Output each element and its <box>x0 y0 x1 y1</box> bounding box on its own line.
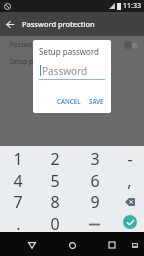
staticText: 6 <box>90 170 100 192</box>
staticText: Setup password <box>10 57 58 66</box>
staticText: 0 <box>50 213 60 235</box>
staticText: SAVE <box>89 97 104 105</box>
staticText: 11:33 <box>123 1 141 11</box>
staticText: 4 <box>13 170 23 192</box>
button[interactable]: Navigate up <box>0 12 20 36</box>
staticText: 9 <box>90 191 100 213</box>
staticText: Password protection <box>22 19 95 29</box>
button[interactable]: Backspace <box>115 191 144 213</box>
staticText: , <box>127 170 132 192</box>
button[interactable]: Minus <box>115 148 144 170</box>
button[interactable]: Switch keyboard <box>126 233 144 256</box>
staticText: Password <box>42 64 88 78</box>
button[interactable]: 0 <box>36 213 73 235</box>
staticText: 1 <box>13 148 23 170</box>
button[interactable]: . <box>0 213 36 235</box>
button[interactable]: Space <box>74 213 115 235</box>
button[interactable]: Password protection <box>0 36 144 53</box>
staticText: - <box>127 148 133 170</box>
button[interactable]: Setup password <box>0 53 144 70</box>
staticText: 3 <box>90 148 100 170</box>
button[interactable]: 1 <box>0 148 36 170</box>
button[interactable]: 7 <box>0 191 36 213</box>
button[interactable]: 2 <box>36 148 73 170</box>
staticText: Password protection <box>10 40 72 49</box>
button[interactable]: 9 <box>74 191 115 213</box>
button[interactable]: Home <box>52 233 92 256</box>
staticText: 5 <box>50 170 60 192</box>
button[interactable]: 5 <box>36 170 73 192</box>
staticText: Setup password <box>39 46 99 57</box>
button[interactable]: 3 <box>74 148 115 170</box>
button[interactable]: 4 <box>0 170 36 192</box>
staticText: 2 <box>50 148 60 170</box>
button[interactable]: Recent apps <box>92 233 132 256</box>
button[interactable]: SAVE <box>87 95 106 107</box>
staticText: 8 <box>50 191 60 213</box>
button[interactable]: 8 <box>36 191 73 213</box>
staticText: CANCEL <box>57 97 81 105</box>
button[interactable]: Enter <box>115 213 144 235</box>
button[interactable]: , <box>115 170 144 192</box>
button[interactable]: Back <box>12 233 52 256</box>
button[interactable]: 6 <box>74 170 115 192</box>
button[interactable]: CANCEL <box>55 95 83 107</box>
staticText: . <box>16 213 21 235</box>
staticText: 7 <box>13 191 23 213</box>
